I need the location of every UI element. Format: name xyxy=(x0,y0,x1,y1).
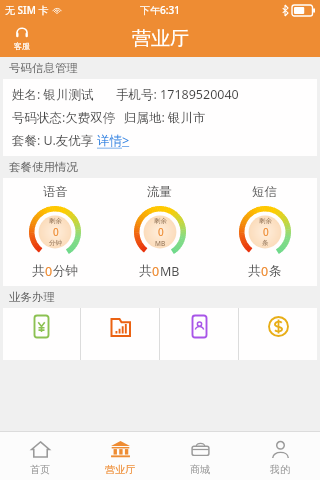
button[interactable]: 营业厅 xyxy=(80,432,160,480)
button[interactable]: 客服 xyxy=(12,26,32,51)
staticText: 客服 xyxy=(14,41,30,51)
staticText: 流量 xyxy=(147,184,172,200)
staticText: 剩余 xyxy=(259,217,272,225)
staticText: 营业厅 xyxy=(132,27,189,51)
staticText: 共 xyxy=(32,263,45,279)
staticText: 条 xyxy=(262,239,269,247)
staticText: 手机号: 17189520040 xyxy=(116,86,239,103)
staticText: 短信 xyxy=(252,184,277,200)
staticText: 我的 xyxy=(270,463,290,476)
button[interactable]: 我的 xyxy=(240,432,320,480)
button[interactable]: 话费充值 xyxy=(3,308,80,360)
button[interactable]: 语音 xyxy=(3,184,107,280)
button[interactable]: 首页 xyxy=(0,432,80,480)
staticText: 无 SIM 卡 xyxy=(5,3,49,17)
staticText: 共 xyxy=(139,263,152,279)
staticText: 共 xyxy=(248,263,261,279)
staticText: 姓名: 银川测试 xyxy=(12,86,94,103)
staticText: 号码状态:欠费双停 xyxy=(12,109,116,126)
staticText: 0 xyxy=(53,225,59,239)
staticText: 详情> xyxy=(97,132,130,149)
button[interactable]: 详情> xyxy=(97,132,130,149)
button[interactable]: 流量 xyxy=(107,184,212,280)
staticText: 号码信息管理 xyxy=(9,61,78,75)
staticText: 0 xyxy=(158,225,164,239)
button[interactable]: 短信 xyxy=(212,184,317,280)
staticText: 商城 xyxy=(190,463,210,476)
staticText: 下午6:31 xyxy=(140,3,180,17)
button[interactable]: 详单查询 xyxy=(81,308,159,360)
button[interactable]: business xyxy=(160,308,238,360)
staticText: 条 xyxy=(269,263,282,279)
staticText: MB xyxy=(155,239,166,248)
staticText: 剩余 xyxy=(154,217,167,225)
staticText: 首页 xyxy=(30,463,50,476)
staticText: 归属地: 银川市 xyxy=(124,109,206,126)
staticText: MB xyxy=(160,263,180,280)
staticText: 分钟 xyxy=(49,239,62,247)
staticText: 分钟 xyxy=(53,263,78,279)
staticText: 套餐使用情况 xyxy=(9,160,78,174)
staticText: 营业厅 xyxy=(105,463,135,476)
staticText: 业务办理 xyxy=(9,290,55,304)
button[interactable]: 商城 xyxy=(160,432,240,480)
staticText: 0 xyxy=(261,263,269,280)
staticText: 剩余 xyxy=(49,217,62,225)
staticText: 0 xyxy=(45,263,53,280)
staticText: 套餐: U.友优享 xyxy=(12,132,97,149)
staticText: 0 xyxy=(152,263,160,280)
staticText: 0 xyxy=(263,225,269,239)
button[interactable]: 套餐订购 xyxy=(239,308,317,360)
staticText: 语音 xyxy=(43,184,68,200)
